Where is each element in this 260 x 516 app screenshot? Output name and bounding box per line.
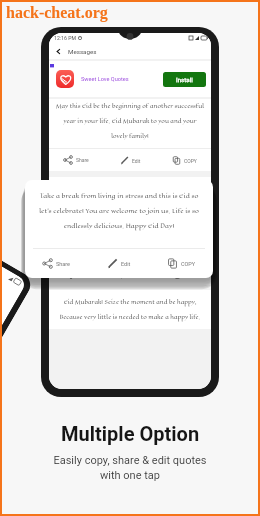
button[interactable]: Edit [103, 270, 157, 279]
button[interactable]: Share [49, 155, 103, 165]
button[interactable]: COPY [157, 156, 211, 165]
button[interactable]: Install [163, 72, 206, 87]
staticText: Multiple Option [61, 422, 200, 445]
button[interactable]: Back [49, 43, 211, 59]
staticText: COPY [181, 261, 196, 267]
button[interactable]: Edit [87, 258, 150, 269]
staticText: COPY [184, 158, 197, 164]
button[interactable]: Sweet Love Quotes [49, 61, 211, 97]
staticText: Easily copy, share & edit quotes with on… [53, 454, 207, 482]
staticText: Take a break from living in stress and t… [25, 191, 213, 231]
staticText: Edit [121, 261, 131, 267]
staticText: 12:16 PM [54, 35, 77, 41]
staticText: Install [176, 76, 193, 83]
staticText: hack-cheat.org [6, 4, 108, 22]
button[interactable]: COPY [157, 270, 211, 279]
staticText: Each and every moment is precious, enjoy… [49, 185, 211, 253]
staticText: Share [76, 157, 89, 163]
staticText: May this Eid be the beginning of another… [49, 102, 211, 140]
staticText: Sweet Love Quotes [81, 76, 129, 83]
staticText: Share [56, 261, 71, 267]
button[interactable]: Edit [103, 156, 157, 165]
button[interactable]: Share [25, 258, 87, 269]
button[interactable]: COPY [150, 258, 213, 269]
button[interactable]: Share [49, 269, 103, 279]
staticText: Edit [132, 158, 141, 164]
other: Back [55, 48, 62, 55]
staticText: Messages [68, 48, 97, 55]
staticText: Eid Mubarak! Seize the moment and be hap… [49, 298, 211, 321]
